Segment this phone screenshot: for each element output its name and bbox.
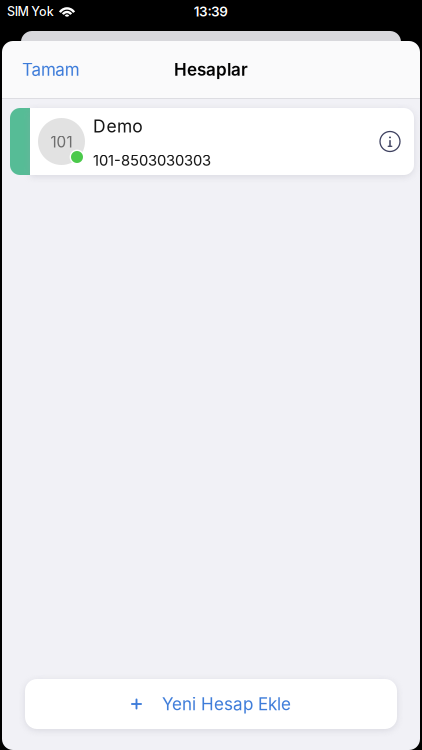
staticText: Demo bbox=[93, 116, 142, 137]
staticText: 13:39 bbox=[194, 3, 228, 20]
staticText: 101 bbox=[50, 133, 72, 151]
staticText: Hesaplar bbox=[174, 59, 248, 80]
staticText: Yeni Hesap Ekle bbox=[162, 694, 291, 714]
button[interactable]: Yeni Hesap Ekle bbox=[25, 679, 397, 729]
button[interactable]: Tamam bbox=[16, 51, 86, 88]
staticText: Tamam bbox=[22, 59, 80, 80]
button[interactable]: 101 bbox=[10, 108, 414, 175]
staticText: SIM Yok bbox=[7, 4, 54, 19]
staticText: 101-8503030303 bbox=[93, 152, 211, 169]
